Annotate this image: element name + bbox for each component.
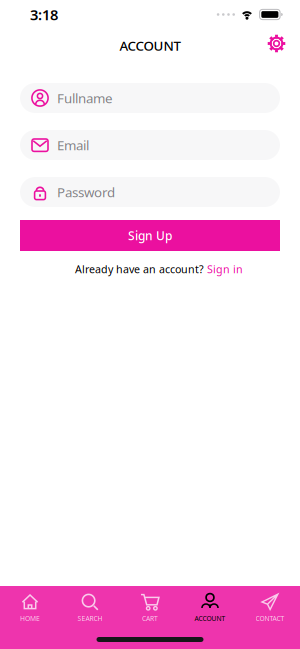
button[interactable]: Sign in (207, 262, 243, 276)
staticText: SEARCH (77, 614, 102, 623)
button[interactable]: Password (20, 177, 280, 207)
staticText: Email (57, 136, 89, 154)
staticText: Sign in (207, 262, 243, 276)
staticText: CART (142, 614, 158, 623)
staticText: 3:18 (30, 5, 58, 24)
staticText: ACCOUNT (119, 37, 180, 54)
button[interactable]: ACCOUNT (180, 592, 240, 623)
button[interactable]: Settings (267, 34, 300, 57)
button[interactable]: Email (20, 130, 280, 160)
button[interactable]: Sign Up (20, 220, 280, 251)
staticText: Already have an account? (75, 262, 204, 276)
staticText: Password (57, 183, 115, 201)
button[interactable]: HOME (0, 592, 60, 623)
button[interactable]: Fullname (20, 83, 280, 113)
staticText: Fullname (57, 89, 113, 107)
staticText: Sign Up (128, 227, 172, 243)
staticText: CONTACT (255, 614, 284, 623)
button[interactable]: CART (120, 592, 180, 623)
staticText: ACCOUNT (194, 614, 225, 623)
button[interactable]: SEARCH (60, 592, 120, 623)
staticText: HOME (20, 614, 40, 623)
button[interactable]: CONTACT (240, 592, 300, 623)
